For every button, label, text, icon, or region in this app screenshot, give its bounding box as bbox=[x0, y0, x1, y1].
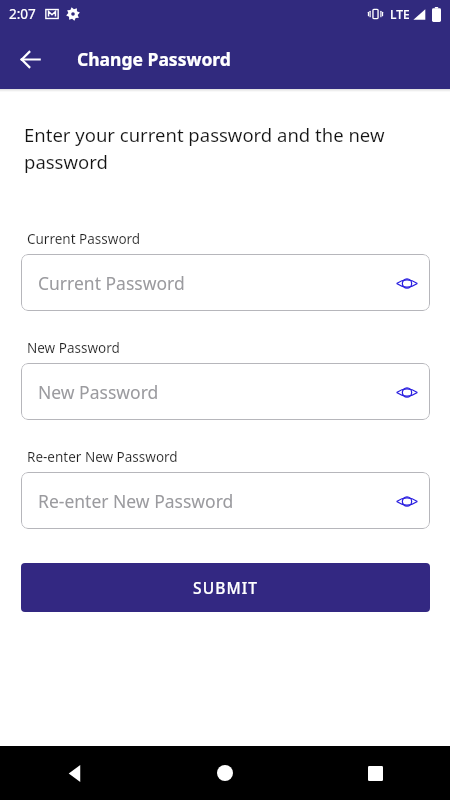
staticText: New Password bbox=[38, 380, 384, 404]
staticText: Re-enter New Password bbox=[38, 489, 384, 513]
staticText: Re-enter New Password bbox=[27, 448, 178, 466]
button[interactable]: Show password bbox=[384, 369, 430, 415]
button[interactable]: Current Password bbox=[21, 254, 430, 311]
staticText: Current Password bbox=[27, 230, 141, 248]
button[interactable]: Show password bbox=[384, 260, 430, 306]
button[interactable]: Show password bbox=[384, 478, 430, 524]
staticText: SUBMIT bbox=[193, 577, 259, 598]
button[interactable]: Re-enter New Password bbox=[21, 472, 430, 529]
staticText: New Password bbox=[27, 339, 120, 357]
staticText: Change Password bbox=[77, 47, 231, 71]
button[interactable]: SUBMIT bbox=[21, 563, 430, 612]
button[interactable]: Recent apps bbox=[351, 749, 399, 797]
staticText: Enter your current password and the new … bbox=[24, 122, 428, 175]
button[interactable]: Back bbox=[8, 37, 52, 81]
staticText: LTE bbox=[390, 6, 410, 22]
button[interactable]: Home bbox=[201, 749, 249, 797]
button[interactable]: New Password bbox=[21, 363, 430, 420]
staticText: 2:07 bbox=[9, 5, 36, 23]
button[interactable]: Back bbox=[51, 749, 99, 797]
staticText: Current Password bbox=[38, 271, 384, 295]
